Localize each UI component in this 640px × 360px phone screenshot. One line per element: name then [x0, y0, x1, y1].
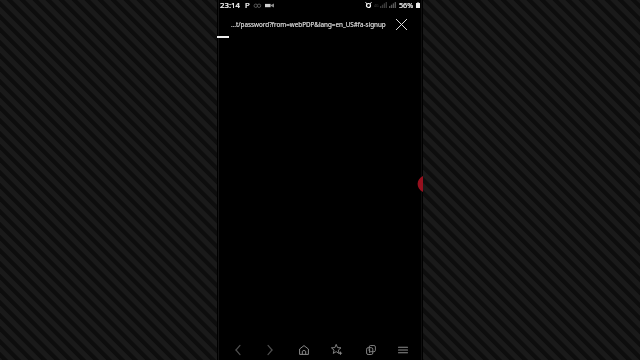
staticText: 56% [399, 0, 414, 10]
staticText: P [245, 0, 250, 10]
button[interactable]: Menu [387, 337, 419, 360]
button[interactable]: Back [222, 337, 254, 360]
button[interactable]: Tabs [355, 337, 387, 360]
staticText: 23:14 [220, 0, 240, 10]
staticText: …t/password?from=webPDP&lang=en_US#fa-si… [231, 20, 386, 29]
button[interactable]: Close tab [391, 14, 411, 34]
button[interactable]: Forward [254, 337, 286, 360]
button[interactable]: Bookmarks [321, 337, 353, 360]
staticText: 4G [374, 3, 379, 8]
button[interactable]: Home [288, 337, 320, 360]
